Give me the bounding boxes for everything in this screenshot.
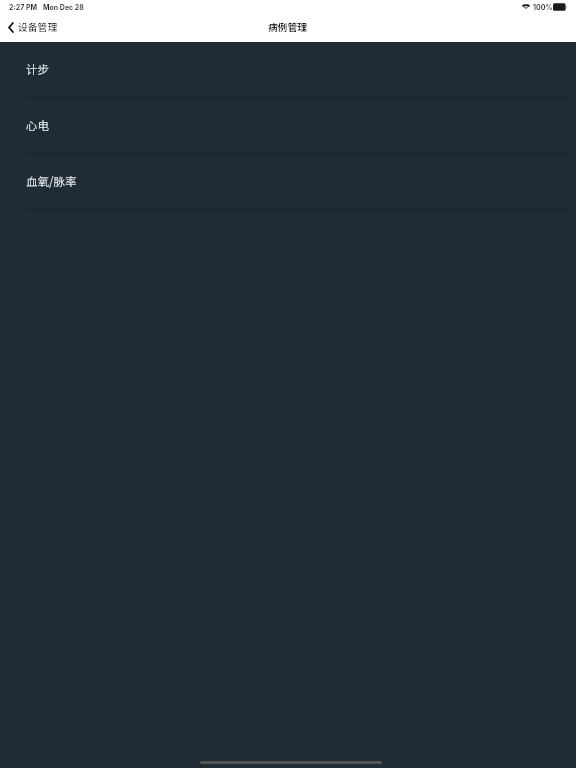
- staticText: 病例管理: [268, 20, 308, 34]
- staticText: Mon Dec 28: [43, 3, 84, 11]
- staticText: 100%: [533, 3, 553, 11]
- staticText: 计步: [26, 61, 49, 78]
- staticText: 血氧/脉率: [26, 173, 77, 190]
- button[interactable]: 血氧/脉率: [0, 154, 576, 210]
- staticText: 心电: [26, 117, 49, 134]
- button[interactable]: Back: [0, 17, 66, 37]
- other: Back: [7, 22, 14, 33]
- button[interactable]: 心电: [0, 98, 576, 154]
- staticText: 设备管理: [18, 20, 58, 34]
- button[interactable]: 计步: [0, 42, 576, 98]
- staticText: 2:27 PM: [9, 3, 37, 11]
